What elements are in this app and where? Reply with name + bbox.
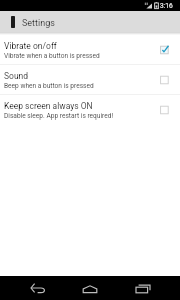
button[interactable]	[158, 104, 171, 117]
staticText: 3:16	[160, 2, 173, 10]
button[interactable]: Keep screen always ON	[0, 95, 180, 125]
button[interactable]	[158, 74, 171, 87]
button[interactable]: Sound	[0, 65, 180, 95]
staticText: Settings	[22, 18, 55, 29]
staticText: Sound	[4, 71, 29, 81]
button[interactable]	[158, 44, 171, 57]
button[interactable]: Home	[75, 276, 105, 300]
button[interactable]: Vibrate on/off	[0, 35, 180, 65]
button[interactable]: Back	[23, 276, 53, 300]
staticText: Beep when a button is pressed	[4, 82, 94, 90]
button[interactable]: Recents	[128, 276, 158, 300]
staticText: Vibrate when a button is pressed	[4, 52, 100, 60]
staticText: Keep screen always ON	[4, 101, 93, 111]
staticText: Vibrate on/off	[4, 41, 57, 51]
staticText: Disable sleep. App restart is required!	[4, 112, 114, 120]
